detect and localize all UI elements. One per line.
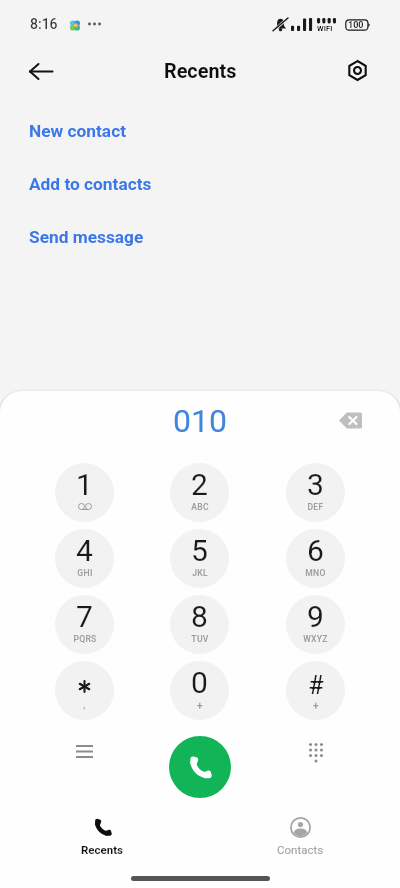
staticText: 4 — [76, 533, 93, 568]
button[interactable]: Call — [169, 736, 231, 798]
button[interactable]: 8 — [170, 595, 229, 654]
button[interactable]: 6 — [286, 529, 345, 588]
button[interactable]: 1 — [55, 463, 114, 522]
staticText: WXYZ — [303, 634, 328, 644]
staticText: MNO — [305, 568, 326, 578]
staticText: 5 — [191, 533, 208, 568]
staticText: JKL — [192, 568, 208, 578]
staticText: New contact — [29, 121, 126, 141]
button[interactable]: 0 — [170, 661, 229, 720]
staticText: DEF — [307, 502, 324, 512]
button[interactable]: More options — [60, 727, 108, 775]
button[interactable]: Add to contacts — [0, 157, 400, 210]
staticText: # — [308, 671, 324, 700]
staticText: + — [197, 700, 203, 712]
button[interactable]: 5 — [170, 529, 229, 588]
staticText: WIFI — [317, 24, 333, 33]
staticText: Add to contacts — [29, 174, 152, 194]
button[interactable]: 2 — [170, 463, 229, 522]
staticText: Send message — [29, 227, 144, 247]
button[interactable]: Recents — [52, 806, 152, 862]
staticText: 7 — [76, 599, 93, 634]
button[interactable]: New contact — [0, 104, 400, 157]
staticText: 3 — [307, 467, 324, 502]
staticText: GHI — [77, 568, 93, 578]
staticText: 6 — [307, 533, 324, 568]
staticText: Recents — [81, 843, 124, 856]
staticText: , — [83, 700, 86, 711]
button[interactable]: 7 — [55, 595, 114, 654]
button[interactable]: Hide dialpad — [292, 728, 340, 776]
staticText: Recents — [164, 60, 237, 83]
staticText: 9 — [307, 599, 324, 634]
button[interactable]: Send message — [0, 210, 400, 263]
button[interactable]: 4 — [55, 529, 114, 588]
staticText: 0 — [191, 665, 208, 700]
button[interactable]: Backspace — [328, 398, 372, 442]
button[interactable]: , — [55, 661, 114, 720]
staticText: 8:16 — [30, 16, 58, 32]
staticText: + — [313, 700, 319, 712]
staticText: ABC — [191, 502, 209, 512]
staticText: 2 — [191, 467, 208, 502]
staticText: 010 — [173, 402, 227, 440]
staticText: 1 — [76, 467, 93, 502]
button[interactable]: Settings — [333, 46, 381, 94]
button[interactable]: # — [286, 661, 345, 720]
button[interactable]: Contacts — [250, 806, 350, 862]
button[interactable]: 9 — [286, 595, 345, 654]
button[interactable]: 3 — [286, 463, 345, 522]
button[interactable]: Back — [17, 47, 65, 95]
staticText: Contacts — [277, 843, 324, 856]
staticText: 8 — [191, 599, 208, 634]
staticText: TUV — [191, 634, 209, 644]
staticText: PQRS — [73, 634, 97, 644]
staticText: 100 — [348, 20, 364, 31]
